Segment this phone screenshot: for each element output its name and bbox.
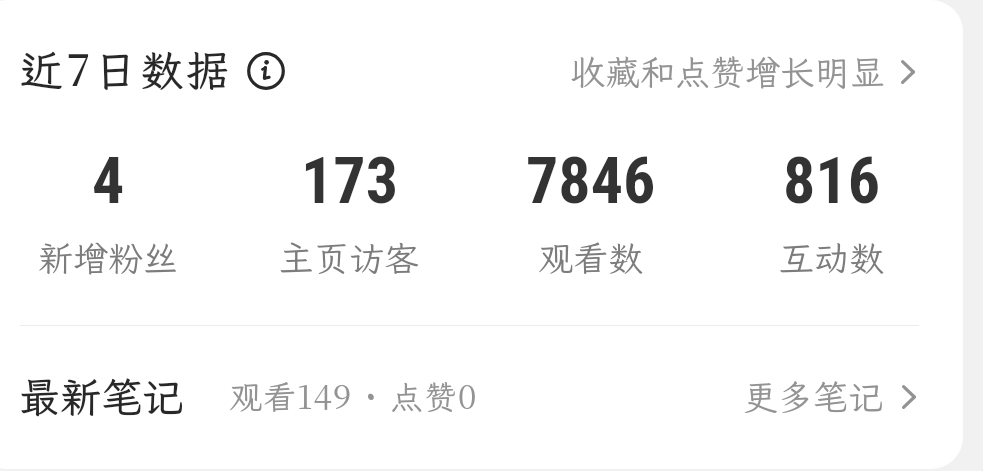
other: Open [902, 385, 916, 409]
staticText: 4 [92, 144, 125, 219]
staticText: 816 [783, 144, 881, 219]
button[interactable]: 7846 [470, 144, 711, 281]
button[interactable]: 4 [0, 144, 229, 281]
button[interactable]: 收藏和点赞增长明显 [562, 45, 923, 99]
staticText: 观看数 [538, 235, 644, 281]
button[interactable]: 近7日数据 [12, 33, 293, 103]
staticText: 观看149 · 点赞0 [229, 371, 478, 418]
button[interactable]: 最新笔记 [0, 326, 963, 468]
other: More information [247, 52, 285, 90]
button[interactable]: 173 [229, 144, 470, 281]
staticText: 收藏和点赞增长明显 [570, 49, 886, 95]
staticText: 最新笔记 [19, 370, 183, 424]
staticText: 近7日数据 [20, 37, 233, 99]
button[interactable]: 816 [711, 144, 952, 281]
other: Open [901, 60, 915, 84]
staticText: 主页访客 [279, 235, 420, 281]
staticText: 新增粉丝 [38, 235, 179, 281]
staticText: 互动数 [779, 235, 885, 281]
staticText: 7846 [526, 144, 656, 219]
staticText: 173 [301, 144, 399, 219]
staticText: 更多笔记 [743, 374, 884, 420]
